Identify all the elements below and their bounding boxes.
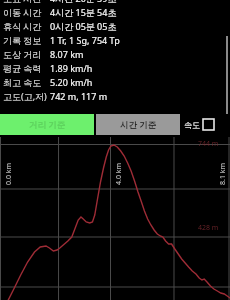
staticText: 소요 시간 <box>3 0 42 4</box>
staticText: 744 m <box>198 139 219 149</box>
button[interactable]: 시간 기준 <box>96 114 180 135</box>
staticText: 0시간 05분 05초 <box>50 20 117 32</box>
button[interactable]: 휴식 시간 <box>0 19 230 33</box>
staticText: 1 Tr, 1 Sg, 754 Tp <box>50 34 120 46</box>
other: Show speed <box>203 119 214 130</box>
staticText: 8.07 km <box>50 48 84 60</box>
button[interactable]: 이동 시간 <box>0 5 230 19</box>
staticText: 4.0 km <box>114 163 124 185</box>
staticText: 428 m <box>198 223 219 233</box>
staticText: 5.20 km/h <box>50 76 93 88</box>
button[interactable]: 거리 기준 <box>0 114 94 135</box>
button[interactable]: 오름,내림 <box>0 103 230 105</box>
staticText: 속도 <box>184 120 200 130</box>
staticText: 고도(고,저) <box>3 90 47 102</box>
staticText: 742 m, 117 m <box>50 90 108 102</box>
button[interactable]: 고도(고,저) <box>0 89 230 103</box>
staticText: 이동 시간 <box>3 6 42 18</box>
button[interactable]: 최고 속도 <box>0 75 230 89</box>
staticText: 거리 기준 <box>29 119 66 131</box>
staticText: 8.1 km <box>218 163 228 185</box>
staticText: 시간 기준 <box>120 119 157 131</box>
staticText: 기록 정보 <box>3 34 42 46</box>
button[interactable]: 소요 시간 <box>0 0 230 5</box>
button[interactable]: 평균 속력 <box>0 61 230 75</box>
staticText: 평균 속력 <box>3 62 42 74</box>
staticText: 4시간 20분 59초 <box>50 0 117 4</box>
staticText: 도상 거리 <box>3 48 42 60</box>
button[interactable]: 속도 <box>184 114 214 135</box>
button[interactable]: 도상 거리 <box>0 47 230 61</box>
staticText: 4시간 15분 54초 <box>50 6 117 18</box>
staticText: 0.0 km <box>4 163 14 185</box>
staticText: 휴식 시간 <box>3 20 42 32</box>
staticText: 최고 속도 <box>3 76 42 88</box>
staticText: 1.89 km/h <box>50 62 93 74</box>
button[interactable]: 기록 정보 <box>0 33 230 47</box>
